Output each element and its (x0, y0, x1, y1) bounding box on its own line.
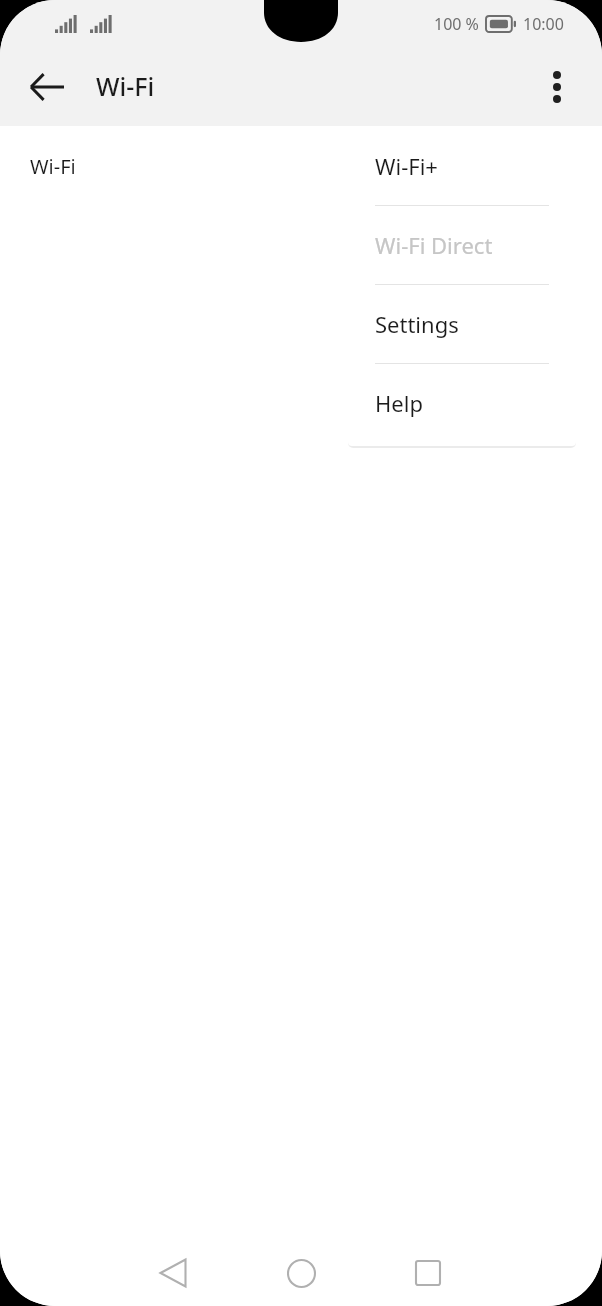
button[interactable]: Back (131, 1240, 215, 1306)
staticText: Settings (375, 309, 459, 339)
button[interactable]: Back (14, 54, 80, 120)
staticText: 10:00 (523, 13, 564, 35)
button[interactable]: Settings (348, 285, 576, 363)
staticText: Wi-Fi Direct (375, 230, 493, 260)
button[interactable]: Wi-Fi Direct (348, 206, 576, 284)
button[interactable]: Help (348, 364, 576, 442)
staticText: Wi-Fi (30, 153, 76, 180)
staticText: Wi-Fi (96, 69, 155, 103)
button[interactable]: Wi-Fi+ (348, 127, 576, 205)
staticText: Wi-Fi+ (375, 151, 438, 181)
staticText: 100 % (434, 13, 479, 35)
button[interactable]: Recent apps (386, 1240, 470, 1306)
button[interactable]: More options (526, 56, 588, 118)
staticText: Help (375, 388, 423, 418)
button[interactable]: Home (259, 1240, 343, 1306)
